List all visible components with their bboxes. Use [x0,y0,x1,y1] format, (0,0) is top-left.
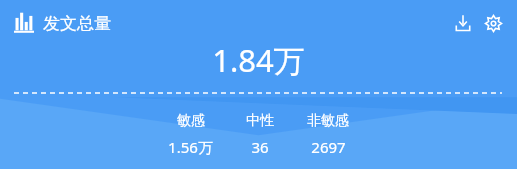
button[interactable]: 中性 [244,112,276,157]
other: Chart [14,13,34,33]
button[interactable]: 非敏感 [305,112,351,157]
staticText: 中性 [246,112,274,130]
staticText: 1.84万 [212,39,305,81]
staticText: 36 [251,137,269,157]
staticText: 非敏感 [307,112,349,130]
staticText: 2697 [311,137,346,157]
button[interactable]: Settings [479,9,507,37]
staticText: 敏感 [177,112,205,130]
staticText: 1.56万 [168,137,213,157]
button[interactable]: Download [449,9,477,37]
button[interactable]: 敏感 [166,112,215,157]
staticText: 发文总量 [43,13,111,34]
